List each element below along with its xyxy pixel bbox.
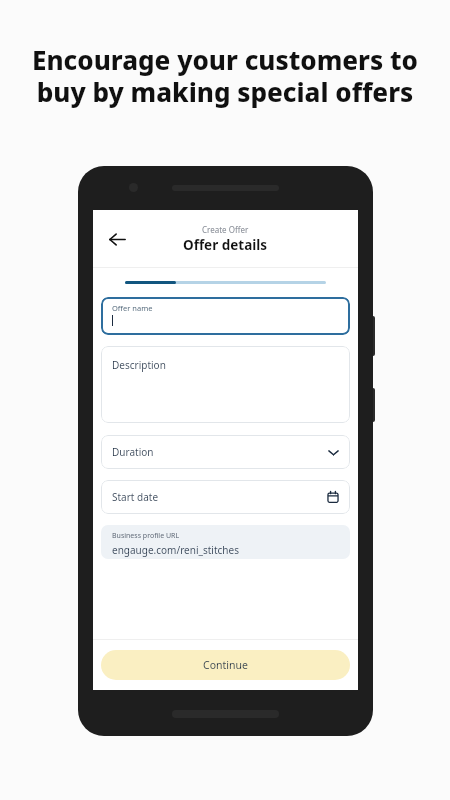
staticText: Start date bbox=[112, 490, 159, 504]
button[interactable]: Start date bbox=[101, 480, 350, 514]
button[interactable]: Back bbox=[101, 223, 133, 255]
staticText: Offer details bbox=[183, 236, 268, 254]
staticText: Duration bbox=[112, 445, 154, 459]
staticText: Create Offer bbox=[202, 224, 249, 235]
button[interactable]: Continue bbox=[101, 650, 350, 680]
staticText: Encourage your customers to buy by makin… bbox=[20, 42, 430, 110]
staticText: Continue bbox=[203, 658, 248, 672]
button[interactable]: Duration bbox=[101, 435, 350, 469]
button[interactable]: Business profile URL bbox=[101, 525, 350, 559]
staticText: engauge.com/reni_stitches bbox=[112, 543, 239, 557]
staticText: Description bbox=[112, 358, 166, 372]
button[interactable]: Offer name bbox=[101, 297, 350, 335]
staticText: Business profile URL bbox=[112, 531, 180, 541]
button[interactable]: Description bbox=[101, 346, 350, 423]
staticText: Offer name bbox=[112, 303, 153, 313]
